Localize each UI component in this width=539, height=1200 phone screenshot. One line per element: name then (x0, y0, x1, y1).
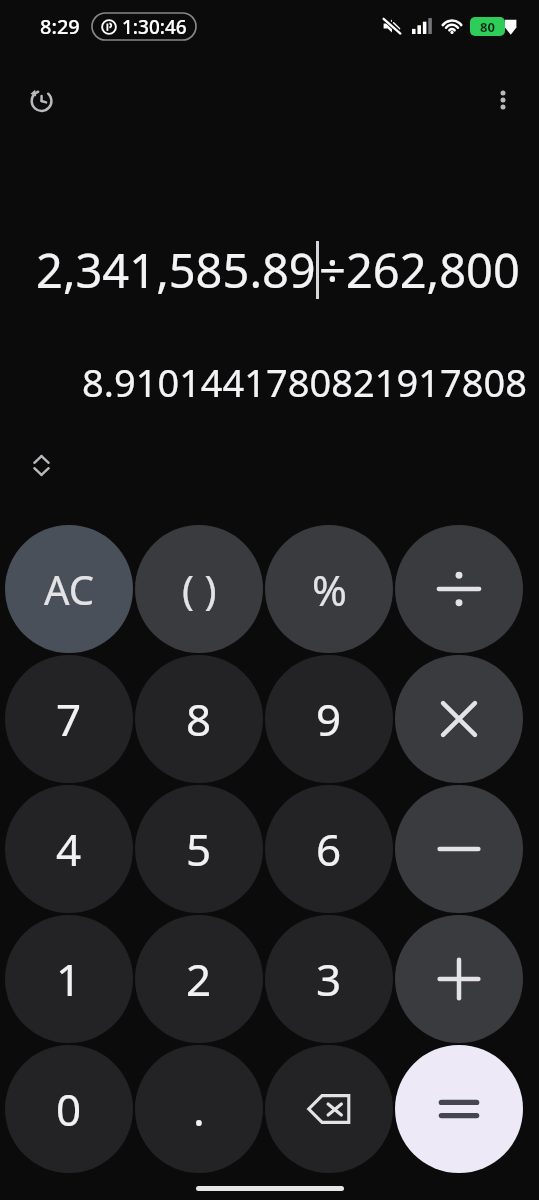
staticText: 8 (186, 689, 212, 749)
button[interactable]: 9 (265, 655, 393, 783)
button[interactable]: Minus (395, 785, 523, 913)
button[interactable]: ( ) (135, 525, 263, 653)
staticText: 3 (316, 949, 342, 1009)
staticText: 80 (480, 18, 495, 36)
button[interactable]: Plus (395, 915, 523, 1043)
staticText: . (193, 1079, 205, 1139)
button[interactable]: 7 (5, 655, 133, 783)
staticText: 9 (316, 689, 342, 749)
button[interactable]: 0 (5, 1045, 133, 1173)
staticText: 4 (56, 819, 82, 879)
staticText: 6 (316, 819, 342, 879)
staticText: AC (44, 562, 95, 616)
staticText: % (312, 561, 347, 618)
staticText: 8:29 (40, 13, 80, 40)
button[interactable]: Multiply (395, 655, 523, 783)
button[interactable]: % (265, 525, 393, 653)
button[interactable]: 5 (135, 785, 263, 913)
staticText: 1 (56, 949, 82, 1009)
staticText: 5 (186, 819, 212, 879)
button[interactable]: 1 (5, 915, 133, 1043)
staticText: 8.9101441780821917808 (82, 356, 527, 408)
button[interactable]: . (135, 1045, 263, 1173)
button[interactable]: 8 (135, 655, 263, 783)
button[interactable]: 4 (5, 785, 133, 913)
staticText: 2,341,585.89 (36, 238, 316, 302)
button[interactable]: More options (479, 76, 527, 124)
staticText: ( ) (182, 562, 217, 616)
button[interactable]: Backspace (265, 1045, 393, 1173)
other: Silent mode (382, 16, 402, 36)
staticText: 1:30:46 (122, 14, 187, 40)
staticText: 2 (186, 949, 212, 1009)
button[interactable]: Equals (395, 1045, 523, 1173)
button[interactable]: Divide (395, 525, 523, 653)
staticText: ÷262,800 (319, 238, 520, 302)
button[interactable]: 3 (265, 915, 393, 1043)
button[interactable]: History (16, 76, 64, 124)
staticText: 0 (56, 1079, 82, 1139)
staticText: 7 (56, 689, 82, 749)
button[interactable]: Expand result (18, 444, 64, 486)
button[interactable]: 6 (265, 785, 393, 913)
button[interactable]: 2 (135, 915, 263, 1043)
button[interactable]: AC (5, 525, 133, 653)
